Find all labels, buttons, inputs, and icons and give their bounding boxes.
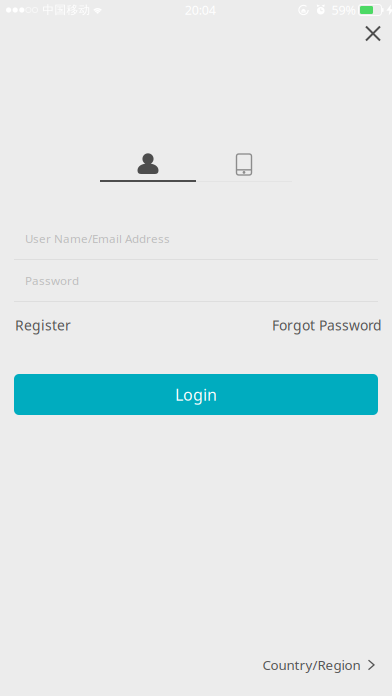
button[interactable]: Phone login (196, 134, 292, 182)
staticText: Login (175, 384, 217, 405)
staticText: Register (15, 316, 71, 334)
button[interactable]: Close (354, 20, 392, 47)
button[interactable]: Account login (100, 134, 196, 182)
staticText: 20:04 (185, 1, 216, 19)
button[interactable]: Register (0, 309, 79, 341)
staticText: User Name/Email Address (25, 231, 170, 246)
staticText: 中国移动 (43, 3, 91, 17)
staticText: Forgot Password (272, 316, 382, 334)
button[interactable]: Country/Region (262, 648, 374, 682)
staticText: 59% (331, 1, 355, 19)
staticText: Password (25, 273, 79, 288)
staticText: Country/Region (262, 656, 360, 674)
button[interactable]: Login (14, 374, 378, 415)
button[interactable]: Forgot Password (264, 309, 392, 341)
